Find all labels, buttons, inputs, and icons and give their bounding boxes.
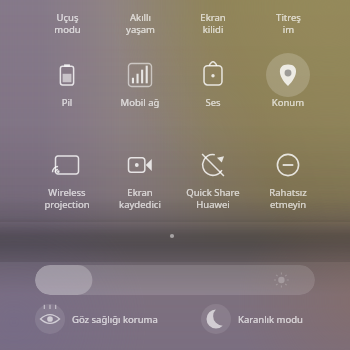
staticText: Pil [27, 96, 107, 109]
staticText: Uçuş modu [54, 11, 81, 36]
staticText: Titreş im [276, 11, 301, 36]
button[interactable]: Ses [176, 49, 250, 123]
staticText: Rahatsız etmeyin [248, 186, 328, 211]
staticText: Quick Share Huawei [173, 186, 253, 211]
staticText: Karanlık modu [238, 313, 303, 326]
staticText: Ekran kilidi [200, 11, 226, 36]
staticText: Göz sağlığı koruma [72, 313, 158, 326]
button[interactable]: Titreş im [253, 0, 323, 36]
button[interactable]: Rahatsız etmeyin [251, 139, 325, 213]
button[interactable]: Quick Share Huawei [176, 139, 250, 213]
button[interactable]: Akıllı yaşam [105, 0, 175, 36]
staticText: Mobil ağ [100, 96, 180, 109]
staticText: Ekran kaydedici [100, 186, 180, 211]
button[interactable]: Dark mode [190, 302, 350, 336]
staticText: Ses [173, 96, 253, 109]
button[interactable]: Brightness [35, 265, 315, 295]
staticText: Konum [248, 96, 328, 109]
staticText: Wireless projection [27, 186, 107, 211]
button[interactable]: Konum [251, 49, 325, 123]
button[interactable]: Wireless projection [30, 139, 104, 213]
button[interactable]: Eye comfort [24, 302, 188, 336]
staticText: Akıllı yaşam [126, 11, 155, 36]
button[interactable]: Mobil ağ [103, 49, 177, 123]
button[interactable]: Ekran kilidi [178, 0, 248, 36]
button[interactable]: Uçuş modu [32, 0, 102, 36]
button[interactable]: Pil [30, 49, 104, 123]
button[interactable]: Ekran kaydedici [103, 139, 177, 213]
